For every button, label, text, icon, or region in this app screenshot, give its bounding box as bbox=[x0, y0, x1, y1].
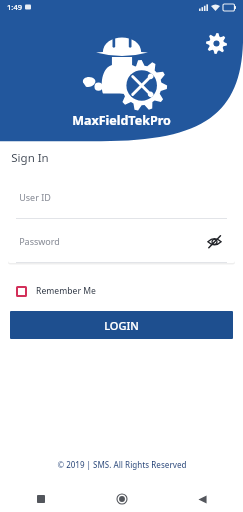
staticText: LOGIN bbox=[104, 318, 139, 333]
button[interactable]: Remember Me bbox=[14, 282, 98, 300]
staticText: Sign In bbox=[11, 150, 49, 166]
button[interactable]: Password bbox=[8, 219, 235, 263]
button[interactable]: User ID bbox=[8, 175, 235, 219]
staticText: Remember Me bbox=[36, 285, 96, 297]
button[interactable]: LOGIN bbox=[10, 311, 233, 339]
staticText: Password bbox=[19, 235, 60, 247]
button[interactable]: Show password bbox=[203, 230, 225, 252]
button[interactable]: Recent apps bbox=[0, 486, 81, 512]
staticText: MaxFieldTekPro bbox=[72, 112, 171, 129]
staticText: 1:49 bbox=[7, 2, 22, 12]
button[interactable]: Back bbox=[162, 486, 243, 512]
staticText: © 2019 | SMS. All Rights Reserved bbox=[57, 459, 187, 470]
staticText: User ID bbox=[19, 191, 51, 203]
button[interactable]: Settings bbox=[199, 26, 233, 60]
button[interactable]: Home bbox=[81, 486, 162, 512]
